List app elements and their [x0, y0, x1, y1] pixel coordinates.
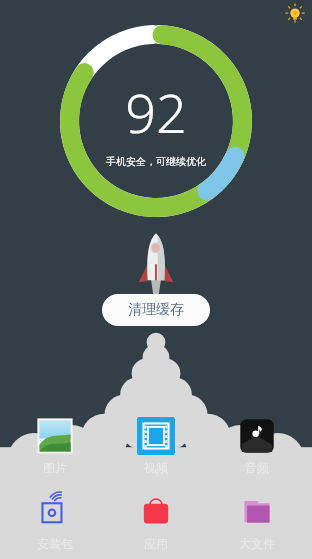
staticText: 图片: [43, 460, 67, 475]
button[interactable]: 图片: [9, 415, 101, 477]
button[interactable]: 音频: [211, 415, 303, 477]
staticText: 92: [125, 75, 187, 149]
button[interactable]: 安装包: [9, 491, 101, 553]
staticText: 清理缓存: [128, 301, 184, 319]
button[interactable]: Tips: [284, 3, 306, 25]
staticText: 音频: [245, 460, 269, 475]
staticText: 安装包: [37, 536, 73, 551]
staticText: 大文件: [239, 536, 275, 551]
staticText: 视频: [144, 460, 168, 475]
button[interactable]: 清理缓存: [102, 294, 210, 326]
button[interactable]: 视频: [110, 415, 202, 477]
button[interactable]: 大文件: [211, 491, 303, 553]
staticText: 手机安全，可继续优化: [106, 155, 206, 168]
button[interactable]: 应用: [110, 491, 202, 553]
staticText: 应用: [144, 536, 168, 551]
